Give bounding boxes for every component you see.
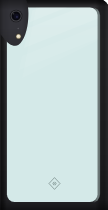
button[interactable]: Mint phone case product photo	[0, 0, 108, 210]
